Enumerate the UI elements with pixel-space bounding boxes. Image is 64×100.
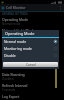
staticText: Monitoring mode	[4, 46, 32, 51]
staticText: Band Selection	[2, 61, 26, 66]
button[interactable]: App icon	[0, 4, 64, 11]
button[interactable]: Cancel	[3, 62, 58, 67]
staticText: Auto Reconnect	[2, 39, 28, 44]
staticText: Network Light Mode	[2, 28, 35, 33]
staticText: Enable	[2, 44, 11, 48]
staticText: Cell Monitor	[6, 5, 26, 10]
staticText: Disabled	[2, 77, 14, 81]
staticText: Cancel	[26, 63, 36, 67]
staticText: Normal mode	[4, 39, 27, 44]
staticText: Refresh Interval	[2, 83, 28, 88]
button[interactable]: Disable	[2, 52, 59, 59]
staticText: GENERAL SETTINGS	[2, 12, 28, 16]
staticText: 5 seconds	[2, 88, 16, 92]
button[interactable]: Data Roaming	[0, 71, 64, 82]
staticText: Operating Mode	[5, 31, 35, 36]
staticText: Cell Lock	[2, 50, 16, 55]
staticText: Auto	[2, 66, 9, 70]
button[interactable]: Log Export	[0, 93, 64, 100]
button[interactable]: Operating Mode	[0, 16, 64, 27]
button[interactable]: More options	[58, 4, 63, 11]
staticText: Disable	[4, 53, 16, 58]
staticText: Normal mode	[2, 22, 21, 26]
staticText: Log Export	[2, 94, 20, 99]
button[interactable]: Refresh Interval	[0, 82, 64, 93]
other: App icon	[1, 6, 5, 10]
staticText: Off	[2, 55, 7, 59]
staticText: Disable	[2, 33, 12, 37]
button[interactable]: Cell Lock	[0, 49, 64, 60]
button[interactable]: Band Selection	[0, 60, 64, 71]
button[interactable]: Network Light Mode	[0, 27, 64, 38]
staticText: Operating Mode	[2, 17, 29, 22]
staticText: Data Roaming	[2, 72, 25, 77]
button[interactable]: Auto Reconnect	[0, 38, 64, 49]
button[interactable]: Normal mode	[2, 38, 59, 45]
button[interactable]: Monitoring mode	[2, 45, 59, 52]
